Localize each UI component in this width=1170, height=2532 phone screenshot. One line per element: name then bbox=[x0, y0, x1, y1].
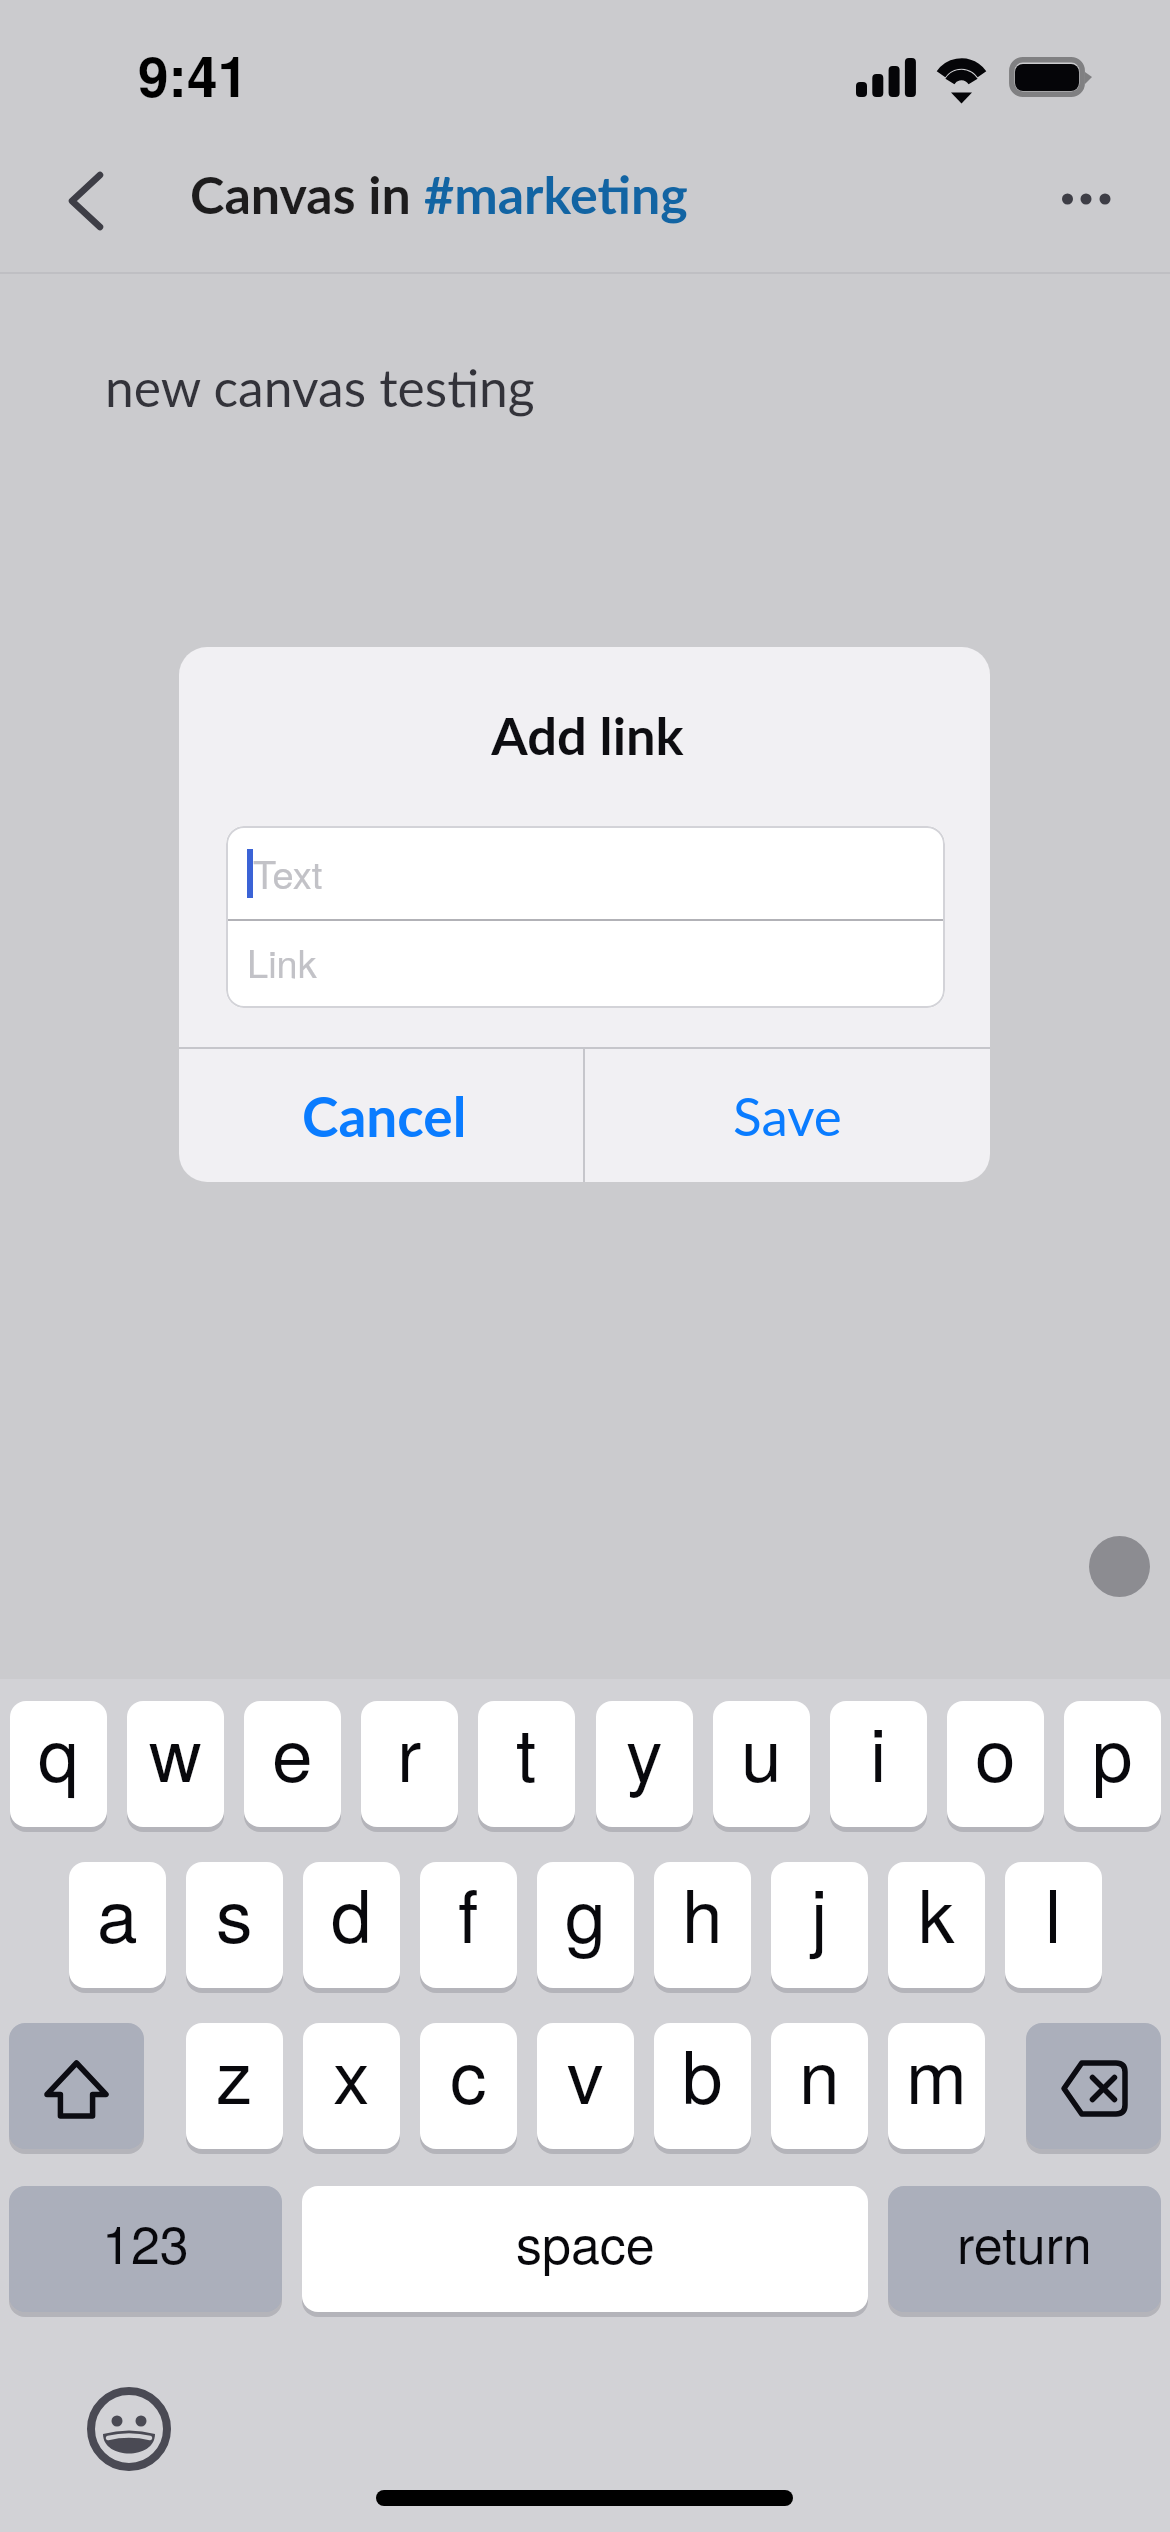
staticText: j bbox=[811, 1862, 828, 1964]
button[interactable]: Back bbox=[39, 154, 133, 248]
button[interactable]: Canvas in bbox=[190, 163, 688, 225]
staticText: k bbox=[918, 1862, 955, 1964]
button[interactable]: Cancel bbox=[179, 1049, 583, 1182]
button[interactable]: m bbox=[888, 2023, 985, 2149]
button[interactable]: return bbox=[888, 2186, 1161, 2312]
button[interactable]: s bbox=[186, 1862, 283, 1988]
button[interactable]: h bbox=[654, 1862, 751, 1988]
staticText: m bbox=[906, 2023, 967, 2125]
button[interactable]: b bbox=[654, 2023, 751, 2149]
staticText: Canvas in bbox=[190, 163, 424, 225]
staticText: c bbox=[450, 2023, 487, 2125]
button[interactable]: u bbox=[713, 1701, 810, 1827]
staticText: b bbox=[682, 2023, 723, 2125]
button[interactable]: k bbox=[888, 1862, 985, 1988]
staticText: r bbox=[397, 1701, 422, 1803]
button[interactable]: g bbox=[537, 1862, 634, 1988]
button[interactable]: t bbox=[478, 1701, 575, 1827]
button[interactable]: Save bbox=[585, 1049, 990, 1182]
staticText: 123 bbox=[102, 2204, 189, 2278]
staticText: Add link bbox=[182, 703, 990, 766]
button[interactable]: o bbox=[947, 1701, 1044, 1827]
staticText: s bbox=[216, 1862, 253, 1964]
button[interactable]: x bbox=[303, 2023, 400, 2149]
button[interactable]: Emoji keyboard bbox=[87, 2387, 171, 2471]
staticText: q bbox=[38, 1701, 79, 1803]
button[interactable]: w bbox=[127, 1701, 224, 1827]
button[interactable]: p bbox=[1064, 1701, 1161, 1827]
staticText: e bbox=[272, 1701, 313, 1803]
button[interactable]: Shift bbox=[9, 2023, 144, 2149]
button[interactable]: space bbox=[302, 2186, 868, 2312]
staticText: p bbox=[1092, 1701, 1133, 1803]
button[interactable]: d bbox=[303, 1862, 400, 1988]
staticText: Text bbox=[253, 845, 323, 899]
staticText: y bbox=[626, 1701, 663, 1803]
button[interactable]: i bbox=[830, 1701, 927, 1827]
staticText: return bbox=[957, 2204, 1092, 2278]
button[interactable]: j bbox=[771, 1862, 868, 1988]
staticText: new canvas testing bbox=[105, 356, 535, 418]
staticText: #marketing bbox=[424, 163, 688, 225]
staticText: g bbox=[565, 1862, 606, 1964]
staticText: a bbox=[97, 1862, 138, 1964]
staticText: w bbox=[149, 1701, 202, 1803]
staticText: Save bbox=[733, 1084, 842, 1148]
button[interactable]: z bbox=[186, 2023, 283, 2149]
staticText: x bbox=[333, 2023, 370, 2125]
staticText: i bbox=[870, 1701, 887, 1803]
staticText: t bbox=[516, 1701, 537, 1803]
staticText: Cancel bbox=[302, 1083, 467, 1149]
staticText: h bbox=[682, 1862, 723, 1964]
staticText: d bbox=[331, 1862, 372, 1964]
button[interactable]: Avatar bbox=[1089, 1536, 1150, 1597]
staticText: space bbox=[516, 2204, 655, 2278]
button[interactable]: Backspace bbox=[1026, 2023, 1161, 2149]
button[interactable]: e bbox=[244, 1701, 341, 1827]
staticText: Link bbox=[247, 934, 317, 988]
button[interactable]: More options bbox=[1044, 152, 1138, 246]
staticText: u bbox=[741, 1701, 782, 1803]
staticText: f bbox=[458, 1862, 479, 1964]
button[interactable]: Text bbox=[226, 826, 945, 918]
staticText: n bbox=[799, 2023, 840, 2125]
button[interactable]: a bbox=[69, 1862, 166, 1988]
staticText: z bbox=[216, 2023, 253, 2125]
button[interactable]: y bbox=[596, 1701, 693, 1827]
button[interactable]: r bbox=[361, 1701, 458, 1827]
staticText: l bbox=[1045, 1862, 1062, 1964]
button[interactable]: n bbox=[771, 2023, 868, 2149]
staticText: o bbox=[975, 1701, 1016, 1803]
button[interactable]: c bbox=[420, 2023, 517, 2149]
staticText: 9:41 bbox=[138, 35, 249, 114]
button[interactable]: 123 bbox=[9, 2186, 282, 2312]
button[interactable]: l bbox=[1005, 1862, 1102, 1988]
button[interactable]: v bbox=[537, 2023, 634, 2149]
button[interactable]: f bbox=[420, 1862, 517, 1988]
staticText: v bbox=[567, 2023, 604, 2125]
button[interactable]: q bbox=[10, 1701, 107, 1827]
button[interactable]: Link bbox=[226, 921, 945, 1008]
